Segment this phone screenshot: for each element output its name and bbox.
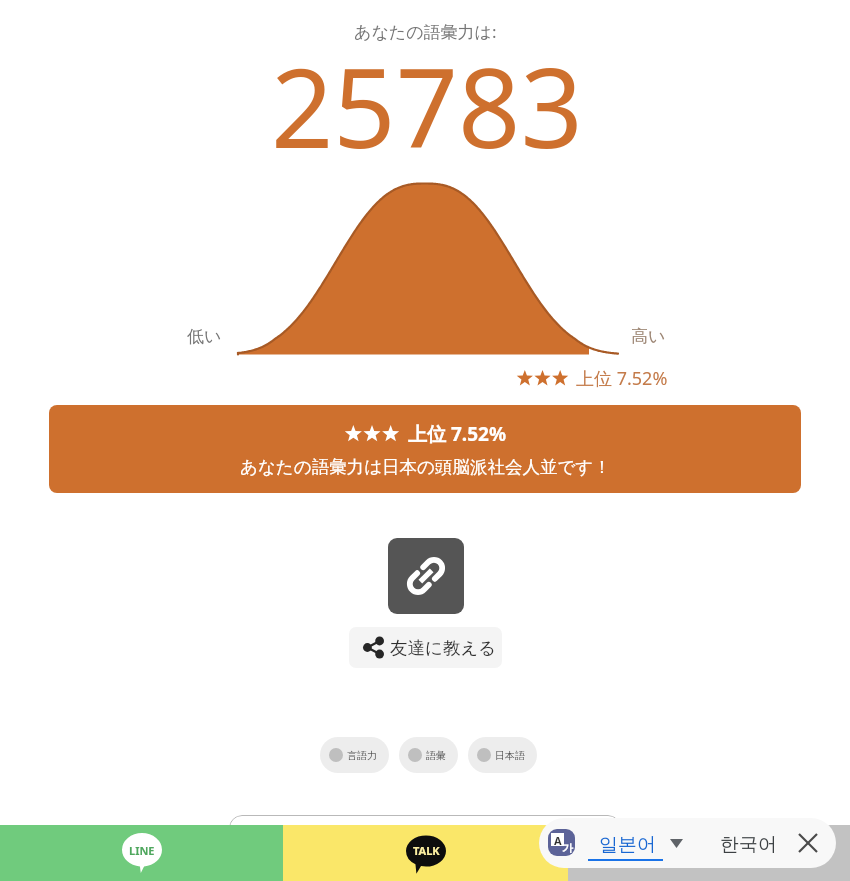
staticText: 高い [631,326,666,347]
button[interactable]: Copy link [388,538,464,614]
button[interactable]: 友達に教える [349,627,502,668]
staticText: LINE [129,843,155,858]
staticText: 한국어 [720,833,777,857]
staticText: 日本語 [495,749,525,762]
button[interactable]: 言語力 [320,737,389,773]
staticText: 가 [562,841,573,855]
button[interactable]: Close [798,833,818,853]
staticText: 上位 7.52% [576,366,668,391]
button[interactable]: Share to LINE [0,825,283,881]
button[interactable]: 日本語 [468,737,537,773]
staticText: 25783 [271,31,583,179]
staticText: 語彙 [426,749,446,762]
staticText: 일본어 [599,833,656,857]
button[interactable]: 上位 7.52% [49,405,801,493]
staticText: あなたの語彙力は日本の頭脳派社会人並です！ [240,456,611,478]
staticText: 言語力 [347,749,377,762]
staticText: A [554,833,562,846]
button[interactable]: 한국어 [711,822,775,864]
staticText: あなたの語彙力は: [354,20,497,43]
button[interactable]: 語彙 [399,737,458,773]
button[interactable]: 일본어 [588,822,704,864]
button[interactable]: Change language [670,839,683,848]
staticText: 上位 7.52% [408,421,507,447]
staticText: 低い [187,326,222,347]
staticText: 友達に教える [390,637,497,659]
button[interactable]: Share to KakaoTalk [283,825,568,881]
staticText: TALK [413,843,440,858]
